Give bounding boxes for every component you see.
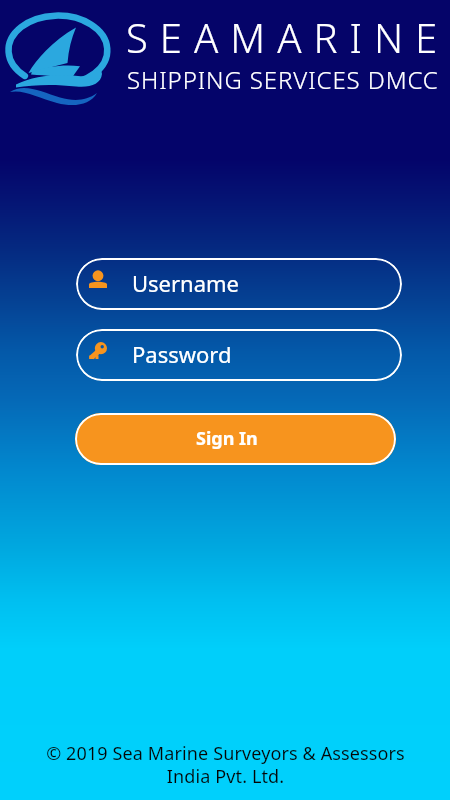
button[interactable]: Sign In — [75, 413, 396, 465]
staticText: SHIPPING SERVICES DMCC — [127, 63, 439, 96]
other: Username — [89, 270, 107, 288]
staticText: Username — [132, 268, 240, 298]
other: Password — [89, 342, 107, 360]
button[interactable]: Password — [76, 329, 402, 381]
staticText: Sign In — [196, 426, 258, 451]
button[interactable]: Username — [76, 258, 402, 310]
staticText: SEAMARINE — [126, 10, 450, 64]
staticText: © 2019 Sea Marine Surveyors & Assessors … — [46, 741, 405, 789]
staticText: Password — [132, 339, 232, 369]
